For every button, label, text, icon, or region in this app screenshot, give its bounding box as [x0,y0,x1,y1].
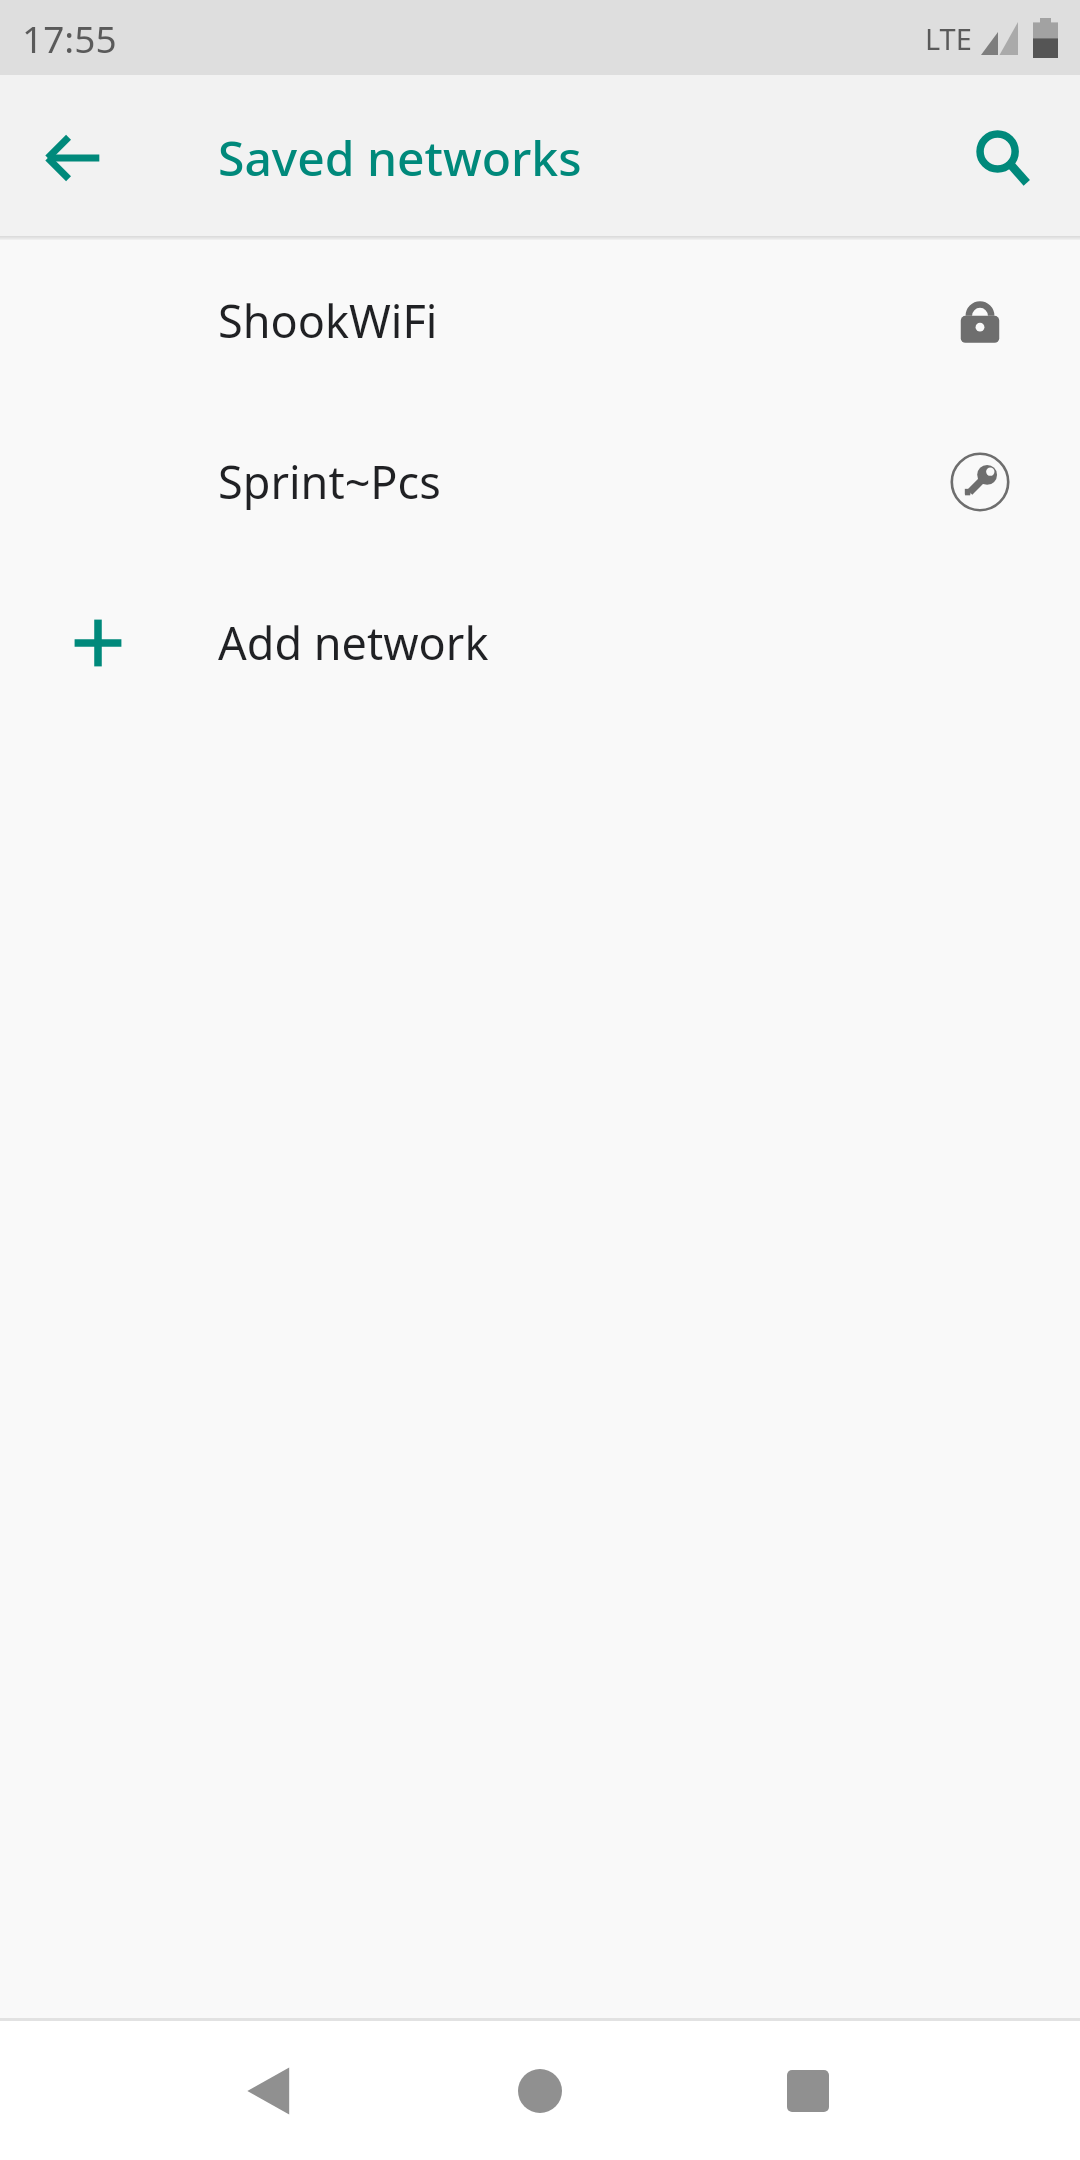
button[interactable]: Sprint~Pcs [0,401,1080,562]
staticText: Saved networks [218,125,582,190]
staticText: LTE [925,19,972,58]
staticText: Sprint~Pcs [218,451,441,512]
button[interactable]: Back [200,2023,336,2159]
button[interactable]: Add network [0,562,1080,723]
staticText: Add network [218,612,489,673]
button[interactable]: Search [948,103,1058,213]
button[interactable]: ShookWiFi [0,240,1080,401]
button[interactable]: Home [472,2023,608,2159]
staticText: ShookWiFi [218,290,438,351]
button[interactable]: Recent apps [740,2023,876,2159]
button[interactable]: Back [18,103,128,213]
staticText: 17:55 [22,13,117,63]
